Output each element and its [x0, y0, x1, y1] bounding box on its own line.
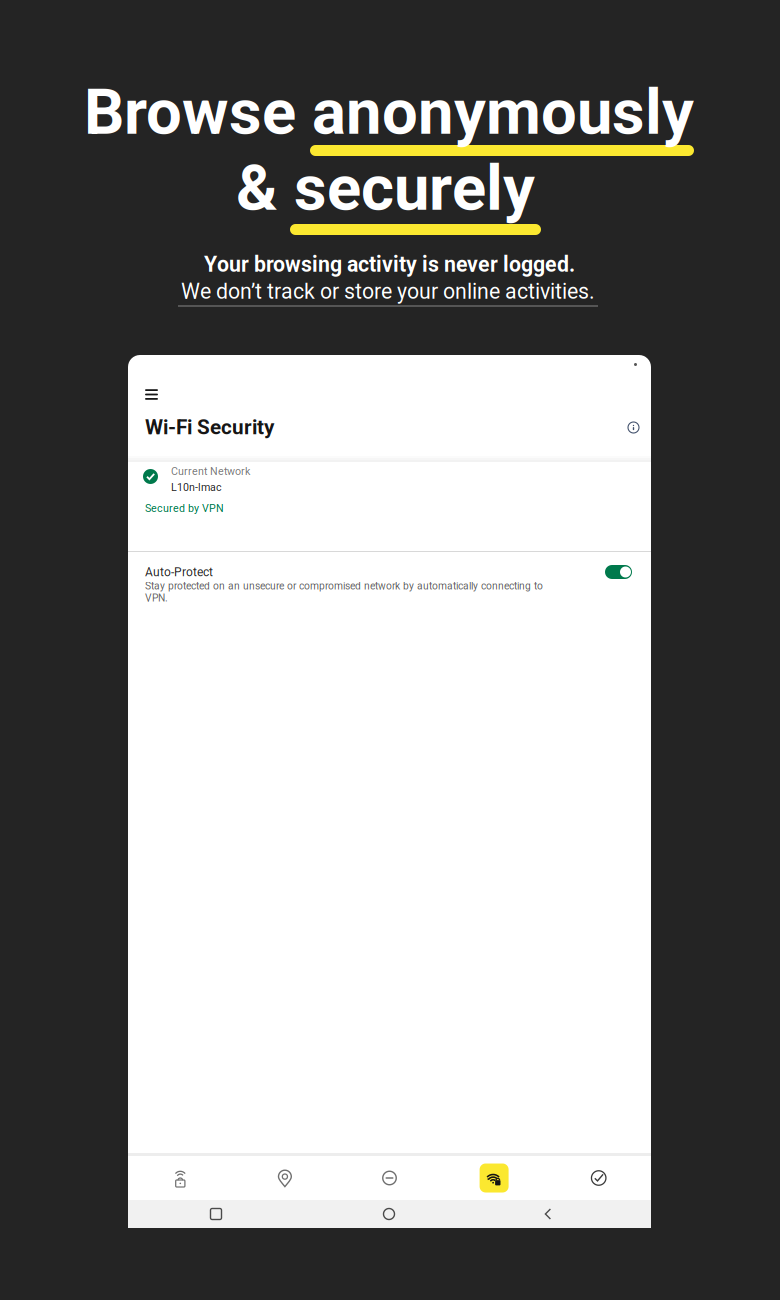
button[interactable]: Back	[528, 1200, 568, 1228]
button[interactable]: Ad blocking	[337, 1155, 442, 1200]
button[interactable]: VPN	[128, 1155, 233, 1200]
button[interactable]: Information	[622, 416, 645, 439]
button[interactable]: Auto-Protect	[128, 559, 651, 634]
button[interactable]: Recent apps	[196, 1200, 236, 1228]
staticText: & securely	[236, 151, 535, 225]
button[interactable]: Home	[369, 1200, 409, 1228]
button[interactable]: Location	[233, 1155, 337, 1200]
staticText: Wi-Fi Security	[145, 415, 274, 439]
button[interactable]: Wi-Fi Security	[442, 1155, 546, 1200]
button[interactable]: Current Network	[128, 462, 651, 549]
staticText: We don’t track or store your online acti…	[181, 279, 595, 304]
button[interactable]: Menu	[139, 383, 164, 406]
staticText: L10n-lmac	[171, 481, 222, 493]
staticText: Auto-Protect	[145, 565, 213, 579]
staticText: Secured by VPN	[145, 502, 224, 514]
staticText: Stay protected on an unsecure or comprom…	[145, 580, 543, 604]
button[interactable]: Status	[546, 1155, 651, 1200]
staticText: Browse anonymously	[84, 75, 694, 149]
staticText: Your browsing activity is never logged.	[204, 252, 575, 277]
staticText: Current Network	[171, 465, 250, 477]
